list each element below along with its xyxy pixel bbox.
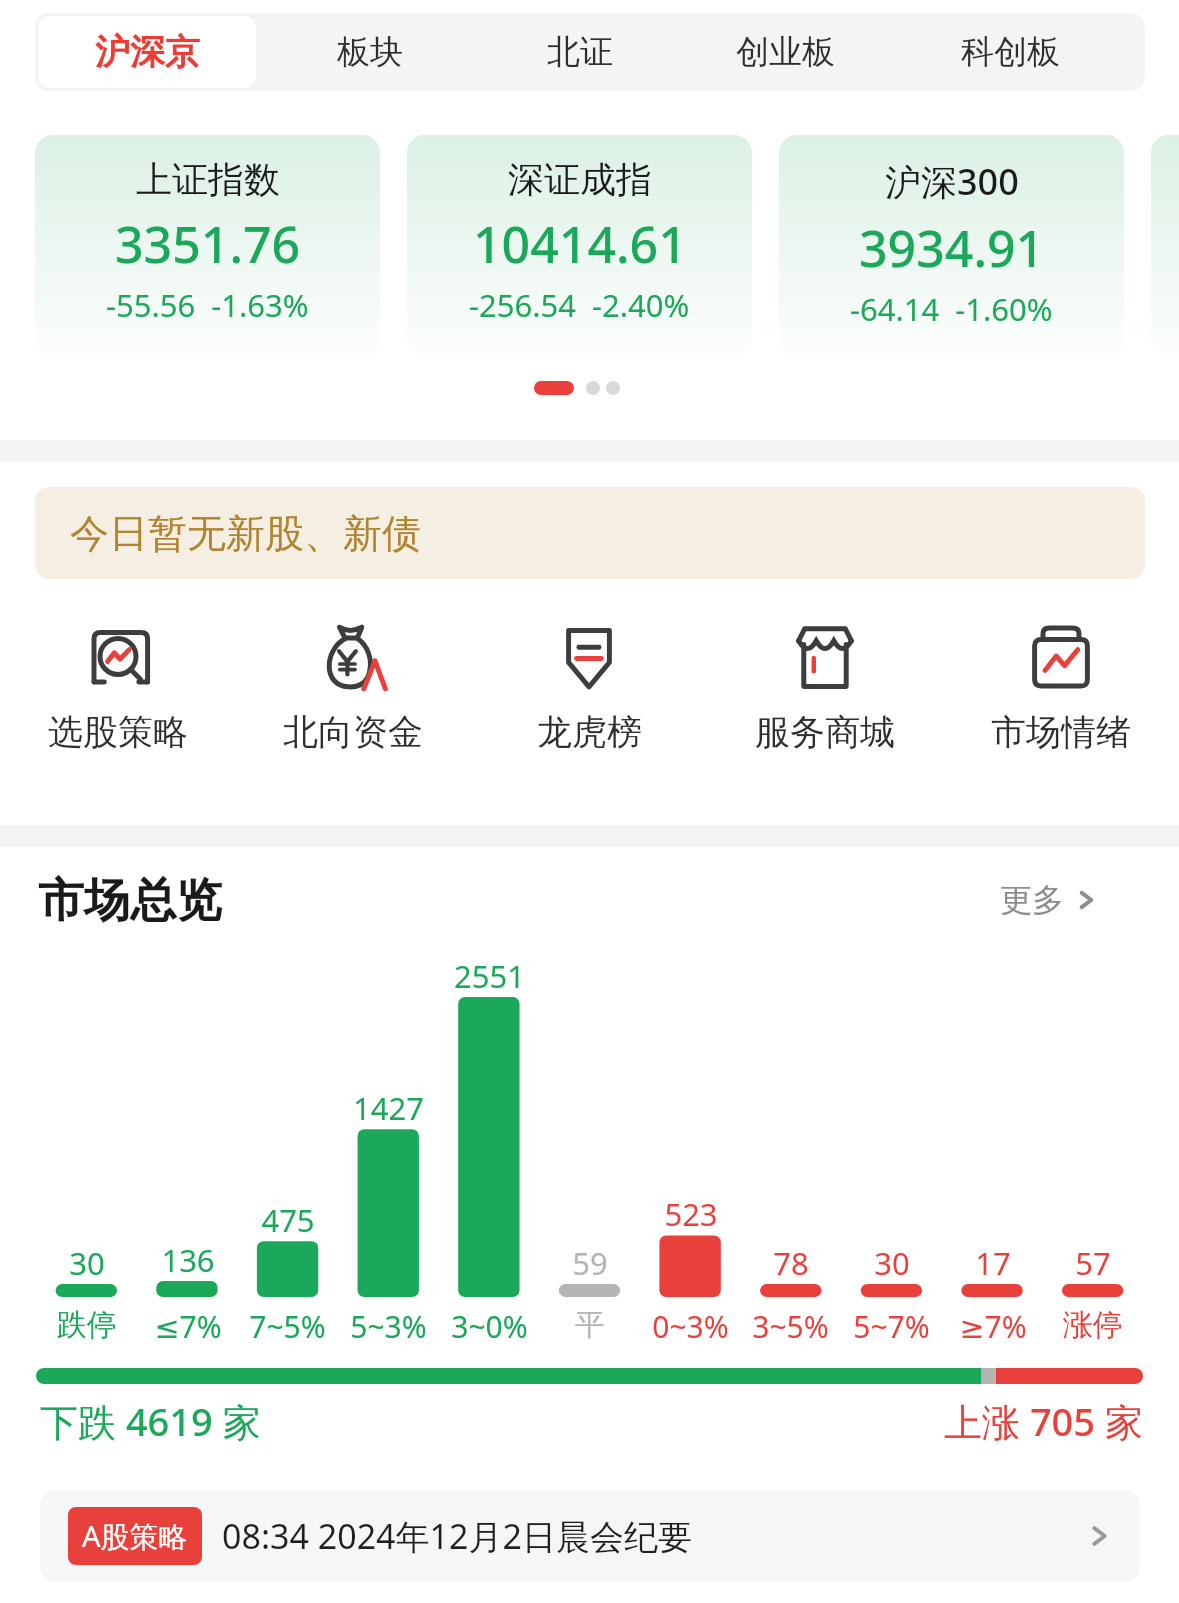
button[interactable]: 上证指数 (35, 135, 380, 357)
staticText: -64.14 -1.60% (850, 288, 1053, 330)
staticText: 30 (69, 1242, 105, 1284)
staticText: 3934.91 (859, 214, 1045, 282)
staticText: 沪深京 (95, 30, 200, 74)
staticText: ≤7% (154, 1306, 222, 1347)
staticText: 板块 (337, 31, 403, 73)
button[interactable]: 创业板 (705, 16, 865, 88)
staticText: 0~3% (652, 1306, 729, 1347)
button[interactable]: 今日暂无新股、新债 (35, 487, 1145, 579)
staticText: 龙虎榜 (537, 710, 642, 754)
staticText: 1427 (353, 1087, 424, 1129)
staticText: A股策略 (82, 1516, 188, 1556)
button[interactable]: 龙虎榜 (471, 618, 707, 754)
staticText: 7~5% (249, 1306, 326, 1347)
staticText: 10414.61 (473, 210, 687, 278)
staticText: 5~3% (350, 1306, 427, 1347)
staticText: -256.54 -2.40% (469, 284, 690, 326)
staticText: 17 (975, 1242, 1011, 1284)
staticText: 服务商城 (755, 710, 895, 754)
staticText: 2551 (454, 955, 525, 997)
staticText: 今日暂无新股、新债 (70, 509, 421, 558)
button[interactable]: 沪深京 (38, 16, 256, 88)
staticText: 深证成指 (508, 157, 652, 202)
staticText: 3~0% (451, 1306, 528, 1347)
staticText: 市场情绪 (991, 710, 1131, 754)
button[interactable]: 板块 (290, 16, 450, 88)
staticText: 59 (572, 1242, 608, 1284)
button[interactable]: A股策略 (40, 1490, 1140, 1582)
button[interactable]: 北向资金 (235, 618, 471, 754)
staticText: 北向资金 (283, 710, 423, 754)
button[interactable]: 市场情绪 (943, 618, 1179, 754)
button[interactable]: 科创板 (930, 16, 1090, 88)
staticText: 平 (575, 1306, 605, 1344)
button[interactable]: 更多 (1000, 880, 1098, 920)
staticText: 跌停 (57, 1306, 117, 1344)
staticText: 上涨 705 家 (944, 1395, 1143, 1447)
staticText: 3351.76 (115, 210, 301, 278)
staticText: 选股策略 (48, 710, 188, 754)
staticText: 3~5% (752, 1306, 829, 1347)
staticText: 08:34 2024年12月2日晨会纪要 (222, 1513, 692, 1559)
button[interactable] (534, 381, 574, 395)
staticText: 涨停 (1063, 1306, 1123, 1344)
staticText: 下跌 4619 家 (40, 1395, 261, 1447)
staticText: 30 (874, 1242, 910, 1284)
staticText: 475 (261, 1199, 315, 1241)
button[interactable]: 沪深300 (779, 135, 1124, 357)
staticText: 创业板 (736, 31, 835, 73)
button[interactable] (1151, 135, 1179, 357)
staticText: 78 (773, 1242, 809, 1284)
staticText: 北证 (547, 31, 613, 73)
other: Open (1086, 1523, 1112, 1549)
button[interactable]: 深证成指 (407, 135, 752, 357)
staticText: 科创板 (961, 31, 1060, 73)
staticText: 5~7% (853, 1306, 930, 1347)
staticText: 57 (1075, 1242, 1111, 1284)
button[interactable]: 选股策略 (0, 618, 235, 754)
staticText: 沪深300 (885, 157, 1019, 206)
staticText: 523 (664, 1193, 718, 1235)
button[interactable]: 市场总览 (38, 872, 222, 930)
staticText: 上证指数 (136, 157, 280, 202)
staticText: ≥7% (959, 1306, 1027, 1347)
button[interactable]: 服务商城 (707, 618, 943, 754)
staticText: 更多 (1000, 880, 1064, 920)
button[interactable]: 北证 (500, 16, 660, 88)
staticText: -55.56 -1.63% (106, 284, 309, 326)
staticText: 136 (161, 1239, 215, 1281)
staticText: 市场总览 (38, 872, 222, 930)
